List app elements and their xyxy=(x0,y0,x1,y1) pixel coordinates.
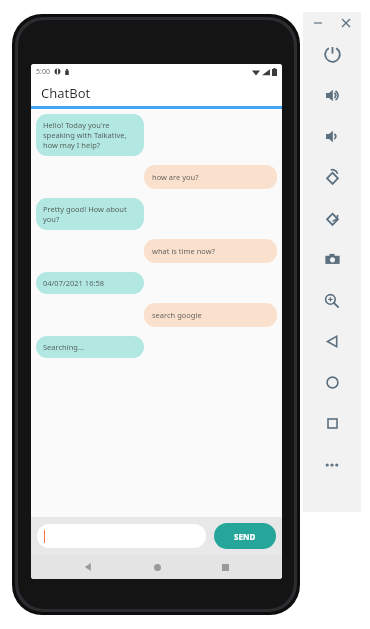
button[interactable]: Home xyxy=(303,362,361,403)
button[interactable]: Recents xyxy=(213,555,237,579)
button[interactable]: Power xyxy=(303,34,361,75)
button[interactable]: search google xyxy=(144,303,277,327)
button[interactable]: Home xyxy=(145,555,169,579)
button[interactable]: how are you? xyxy=(144,165,277,189)
button[interactable]: Rotate right xyxy=(303,198,361,239)
button[interactable]: Zoom xyxy=(303,280,361,321)
button[interactable]: Searching... xyxy=(36,336,144,358)
button[interactable]: Volume down xyxy=(303,116,361,157)
button[interactable]: Screenshot xyxy=(303,239,361,280)
staticText: Hello! Today you're speaking with Talkat… xyxy=(43,120,127,150)
button[interactable]: SEND xyxy=(214,523,276,549)
button[interactable]: Back xyxy=(76,555,100,579)
staticText: Searching... xyxy=(43,342,84,352)
button[interactable]: Hello! Today you're speaking with Talkat… xyxy=(36,114,144,156)
button[interactable]: Message input xyxy=(37,524,206,548)
button[interactable]: Overview xyxy=(303,403,361,444)
button[interactable]: Close xyxy=(338,15,354,31)
button[interactable]: Back xyxy=(303,321,361,362)
staticText: 04/07/2021 16:58 xyxy=(43,278,105,288)
button[interactable]: 04/07/2021 16:58 xyxy=(36,272,144,294)
button[interactable]: Pretty good! How about you? xyxy=(36,198,144,230)
staticText: what is time now? xyxy=(152,246,216,256)
staticText: Pretty good! How about you? xyxy=(43,204,127,224)
button[interactable]: More xyxy=(303,444,361,485)
staticText: ChatBot xyxy=(41,84,91,102)
button[interactable]: Minimize xyxy=(310,15,326,31)
button[interactable]: what is time now? xyxy=(144,239,277,263)
staticText: SEND xyxy=(234,531,256,542)
button[interactable]: Volume up xyxy=(303,75,361,116)
staticText: how are you? xyxy=(152,172,199,182)
button[interactable]: Rotate left xyxy=(303,157,361,198)
staticText: search google xyxy=(152,310,202,320)
staticText: 5:00 xyxy=(36,67,50,77)
